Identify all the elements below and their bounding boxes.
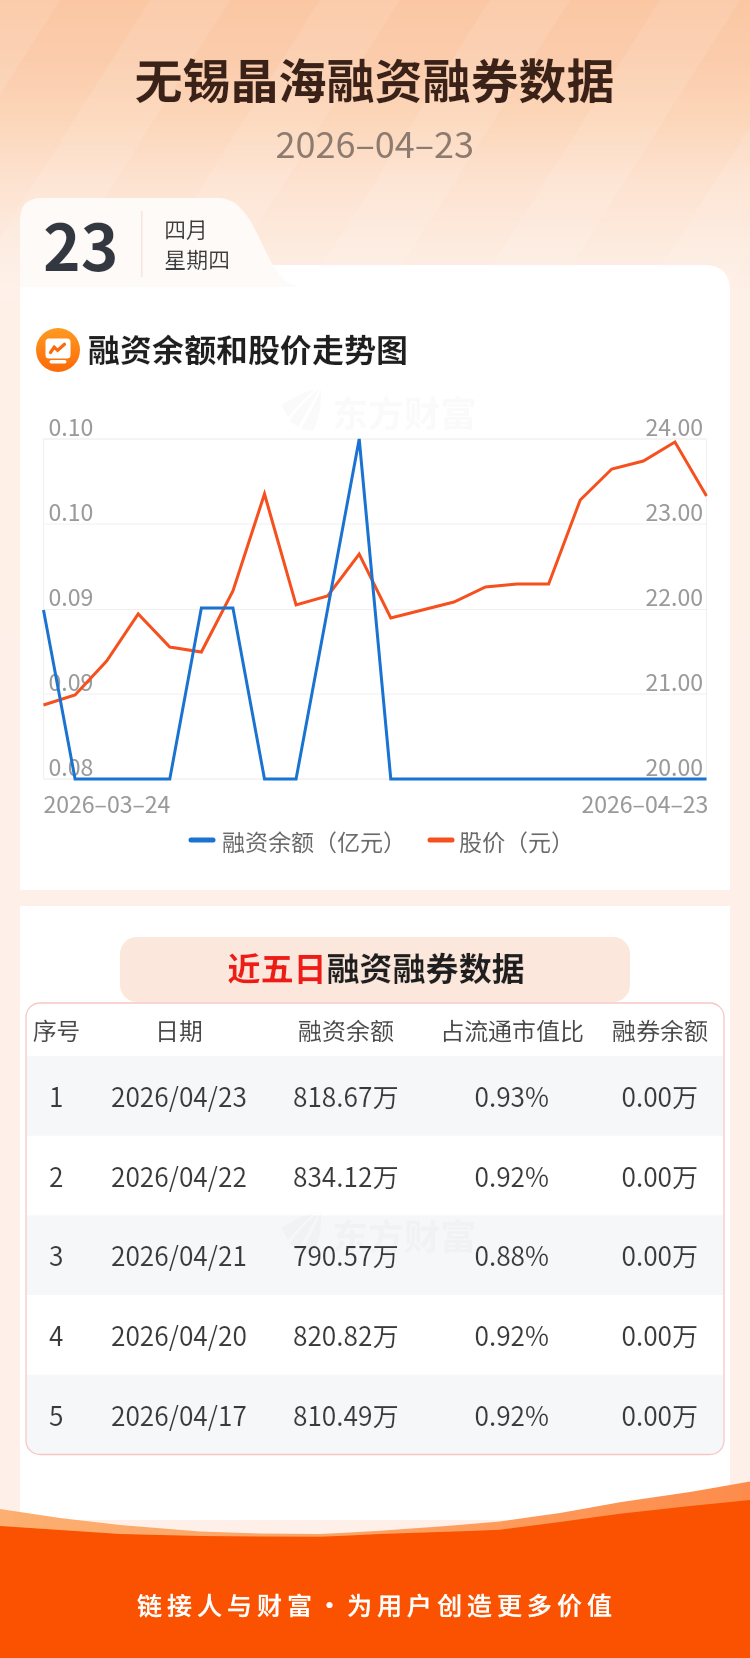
button[interactable] xyxy=(0,0,750,1658)
